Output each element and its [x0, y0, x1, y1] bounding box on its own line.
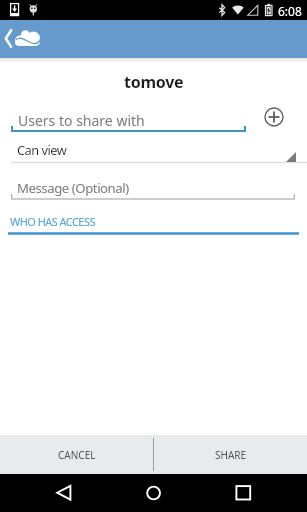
- button[interactable]: WHO HAS ACCESS: [10, 214, 95, 229]
- button[interactable]: Home: [132, 474, 176, 512]
- button[interactable]: Back: [0, 20, 50, 58]
- staticText: Can view: [17, 141, 67, 158]
- staticText: CANCEL: [58, 448, 96, 462]
- staticText: 6:08: [278, 3, 302, 19]
- button[interactable]: SHARE: [154, 435, 307, 474]
- staticText: tomove: [124, 71, 184, 93]
- button[interactable]: Back: [42, 474, 86, 512]
- staticText: Users to share with: [18, 111, 145, 130]
- button[interactable]: Add user: [256, 99, 292, 135]
- button[interactable]: CANCEL: [0, 435, 153, 474]
- button[interactable]: Can view: [17, 141, 67, 158]
- staticText: Message (Optional): [17, 179, 129, 197]
- staticText: SHARE: [215, 448, 247, 462]
- staticText: WHO HAS ACCESS: [10, 214, 95, 229]
- button[interactable]: Recent apps: [222, 474, 266, 512]
